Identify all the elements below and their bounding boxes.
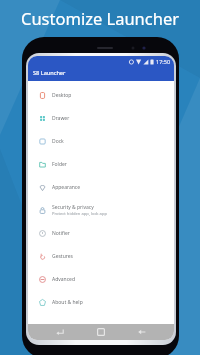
staticText: Desktop [52,92,72,99]
staticText: Security & privacy [52,204,94,211]
staticText: Notifier [52,230,70,237]
button[interactable]: Notifier [28,222,174,245]
staticText: About & help [52,299,83,306]
staticText: Dock [52,138,64,145]
staticText: Customize Launcher [0,7,200,29]
button[interactable]: Folder [28,153,174,176]
staticText: Advanced [52,276,76,283]
button[interactable]: Drawer [28,107,174,130]
button[interactable]: Back [133,324,151,340]
staticText: S8 Launcher [33,69,66,77]
button[interactable]: About & help [28,291,174,314]
staticText: Appearance [52,184,81,191]
staticText: Drawer [52,115,70,122]
button[interactable]: Dock [28,130,174,153]
staticText: Gestures [52,253,73,260]
staticText: Folder [52,161,67,168]
staticText: Protect hidden app, lock app [52,211,107,217]
staticText: 17:50 [156,58,171,65]
button[interactable]: Home [92,324,110,340]
button[interactable]: Desktop [28,84,174,107]
button[interactable]: Advanced [28,268,174,291]
button[interactable]: Security & privacy [28,199,174,222]
button[interactable]: Gestures [28,245,174,268]
button[interactable]: Appearance [28,176,174,199]
button[interactable]: Recent apps [51,324,69,340]
